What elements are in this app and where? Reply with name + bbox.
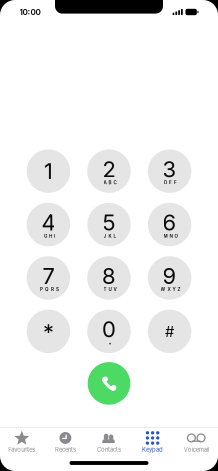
- staticText: 0: [102, 316, 116, 343]
- staticText: PQRS: [40, 287, 59, 292]
- button[interactable]: Keypad: [131, 428, 174, 454]
- staticText: Recents: [55, 446, 76, 453]
- staticText: WXYZ: [161, 287, 181, 292]
- staticText: Keypad: [142, 446, 163, 453]
- button[interactable]: 7: [27, 256, 70, 300]
- button[interactable]: *: [27, 310, 70, 353]
- staticText: 8: [102, 263, 116, 289]
- staticText: ABC: [103, 180, 116, 185]
- button[interactable]: 1: [27, 149, 70, 193]
- button[interactable]: #: [148, 310, 191, 353]
- button[interactable]: Contacts: [87, 428, 131, 454]
- staticText: Voicemail: [184, 446, 209, 453]
- button[interactable]: 3: [148, 149, 191, 193]
- staticText: 7: [42, 263, 54, 289]
- staticText: 3: [163, 156, 177, 182]
- staticText: 9: [163, 263, 177, 289]
- button[interactable]: Favourites: [0, 428, 44, 454]
- staticText: GHI: [44, 233, 55, 239]
- staticText: 5: [102, 209, 115, 236]
- staticText: *: [43, 319, 54, 346]
- button[interactable]: 5: [87, 203, 131, 246]
- staticText: #: [165, 323, 174, 340]
- button[interactable]: Call: [88, 362, 130, 405]
- staticText: 2: [102, 156, 115, 182]
- staticText: DEF: [164, 180, 177, 185]
- staticText: +: [108, 341, 111, 346]
- button[interactable]: Recents: [44, 428, 87, 454]
- staticText: 4: [41, 209, 55, 236]
- staticText: 1: [44, 158, 53, 185]
- button[interactable]: 9: [148, 256, 191, 300]
- button[interactable]: 2: [87, 149, 131, 193]
- button[interactable]: Voicemail: [174, 428, 218, 454]
- staticText: 6: [163, 209, 177, 236]
- button[interactable]: 0: [87, 310, 131, 353]
- staticText: MNO: [164, 233, 178, 239]
- staticText: Favourites: [8, 446, 35, 453]
- button[interactable]: 4: [27, 203, 70, 246]
- staticText: JKL: [103, 233, 116, 239]
- button[interactable]: 6: [148, 203, 191, 246]
- staticText: Contacts: [97, 446, 121, 453]
- button[interactable]: 8: [87, 256, 131, 300]
- staticText: TUV: [103, 287, 116, 292]
- staticText: 10:00: [19, 7, 40, 17]
